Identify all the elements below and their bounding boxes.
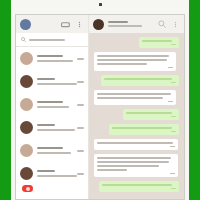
button[interactable] — [16, 47, 88, 70]
button[interactable] — [94, 52, 176, 71]
button[interactable] — [101, 75, 179, 86]
button[interactable] — [139, 37, 179, 48]
button[interactable] — [94, 90, 176, 105]
button[interactable] — [109, 124, 179, 135]
button[interactable]: More options — [75, 20, 84, 29]
button[interactable] — [16, 162, 88, 185]
button[interactable] — [16, 33, 88, 46]
button[interactable]: New chat — [22, 185, 33, 192]
button[interactable] — [16, 116, 88, 139]
button[interactable] — [16, 139, 88, 162]
button[interactable] — [99, 181, 179, 192]
button[interactable] — [94, 154, 178, 177]
button[interactable]: Search — [89, 15, 184, 33]
button[interactable]: More options — [171, 20, 180, 29]
button[interactable]: Camera — [61, 20, 70, 29]
button[interactable]: Profile — [20, 19, 31, 30]
button[interactable]: Search — [158, 20, 166, 28]
button[interactable] — [94, 139, 178, 150]
button[interactable] — [123, 109, 179, 120]
button[interactable] — [16, 70, 88, 93]
button[interactable] — [16, 93, 88, 116]
